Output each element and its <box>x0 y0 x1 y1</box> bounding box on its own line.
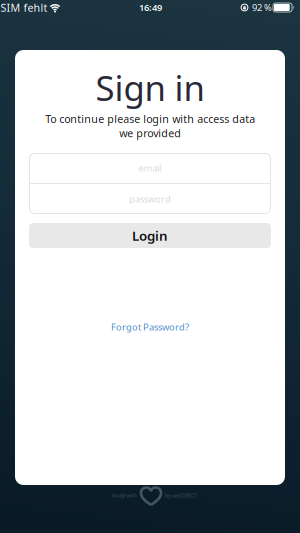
button[interactable]: Forgot Password? <box>111 321 189 333</box>
staticText: 92 % <box>252 1 272 14</box>
staticText: 16:49 <box>139 1 162 14</box>
staticText: Login <box>132 227 168 244</box>
staticText: password <box>129 193 171 205</box>
staticText: Sign in <box>95 64 204 110</box>
button[interactable]: Login <box>29 223 271 248</box>
staticText: SIM fehlt <box>0 0 47 15</box>
staticText: by weDIRECT <box>165 492 197 499</box>
staticText: email <box>138 162 161 174</box>
staticText: made with <box>111 492 136 499</box>
staticText: To continue please login with access dat… <box>45 112 255 140</box>
button[interactable]: email <box>29 153 271 183</box>
button[interactable]: password <box>29 184 271 214</box>
staticText: Forgot Password? <box>111 321 189 333</box>
